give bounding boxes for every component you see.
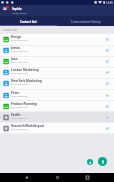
staticText: ENG 1048231741: [11, 50, 29, 53]
button[interactable]: Peter: [0, 90, 114, 101]
staticText: Sophia: [12, 7, 22, 11]
staticText: ENG 1048231741: [11, 128, 29, 131]
button[interactable]: Home: [53, 173, 62, 182]
button[interactable]: London Marketing: [0, 67, 114, 78]
staticText: ENG 1048231741: [11, 39, 29, 42]
button[interactable]: Back: [22, 173, 31, 182]
staticText: Research/Multilingual: [11, 124, 45, 128]
staticText: ENG 1048231741: [11, 117, 29, 120]
staticText: ENG 1048231741: [11, 83, 29, 86]
staticText: Product Planning: [11, 102, 37, 106]
staticText: James: [11, 46, 21, 50]
staticText: Contact List: [3, 28, 18, 32]
button[interactable]: Contact List: [0, 16, 57, 26]
staticText: ENG 1048231741: [11, 106, 29, 109]
button[interactable]: Info: [106, 94, 110, 98]
staticText: 14:45: [106, 1, 113, 5]
button[interactable]: Info: [106, 105, 110, 109]
staticText: ENG 1048231741: [11, 95, 29, 98]
button[interactable]: Design: [0, 34, 114, 45]
staticText: London Marketing: [11, 68, 39, 72]
staticText: ENG 1048231741: [11, 72, 29, 75]
staticText: ENG 1048231741: [11, 61, 29, 64]
button[interactable]: Info: [106, 116, 110, 120]
staticText: Design: [11, 35, 22, 39]
staticText: Contact List: [20, 20, 37, 24]
button[interactable]: Info: [106, 71, 110, 75]
button[interactable]: Call: [87, 159, 93, 165]
button[interactable]: Conversation History: [57, 16, 114, 26]
staticText: Pacific: [11, 113, 21, 117]
button[interactable]: Product Planning: [0, 101, 114, 112]
button[interactable]: Info: [106, 49, 110, 53]
button[interactable]: James: [0, 45, 114, 56]
button[interactable]: New York Marketing: [0, 78, 114, 89]
button[interactable]: Research/Multilingual: [0, 123, 114, 134]
button[interactable]: Jane: [0, 56, 114, 67]
staticText: +49 (0) 1234567: [12, 12, 27, 15]
button[interactable]: Info: [106, 127, 110, 131]
staticText: Conversation History: [71, 20, 101, 24]
button[interactable]: Info: [106, 60, 110, 64]
button[interactable]: Info: [106, 82, 110, 86]
button[interactable]: Pacific: [0, 112, 114, 123]
button[interactable]: Recents: [83, 173, 92, 182]
staticText: Jane: [11, 57, 18, 61]
button[interactable]: New message: [98, 157, 107, 166]
button[interactable]: Info: [106, 38, 110, 42]
staticText: New York Marketing: [11, 79, 42, 83]
staticText: Peter: [11, 91, 20, 95]
